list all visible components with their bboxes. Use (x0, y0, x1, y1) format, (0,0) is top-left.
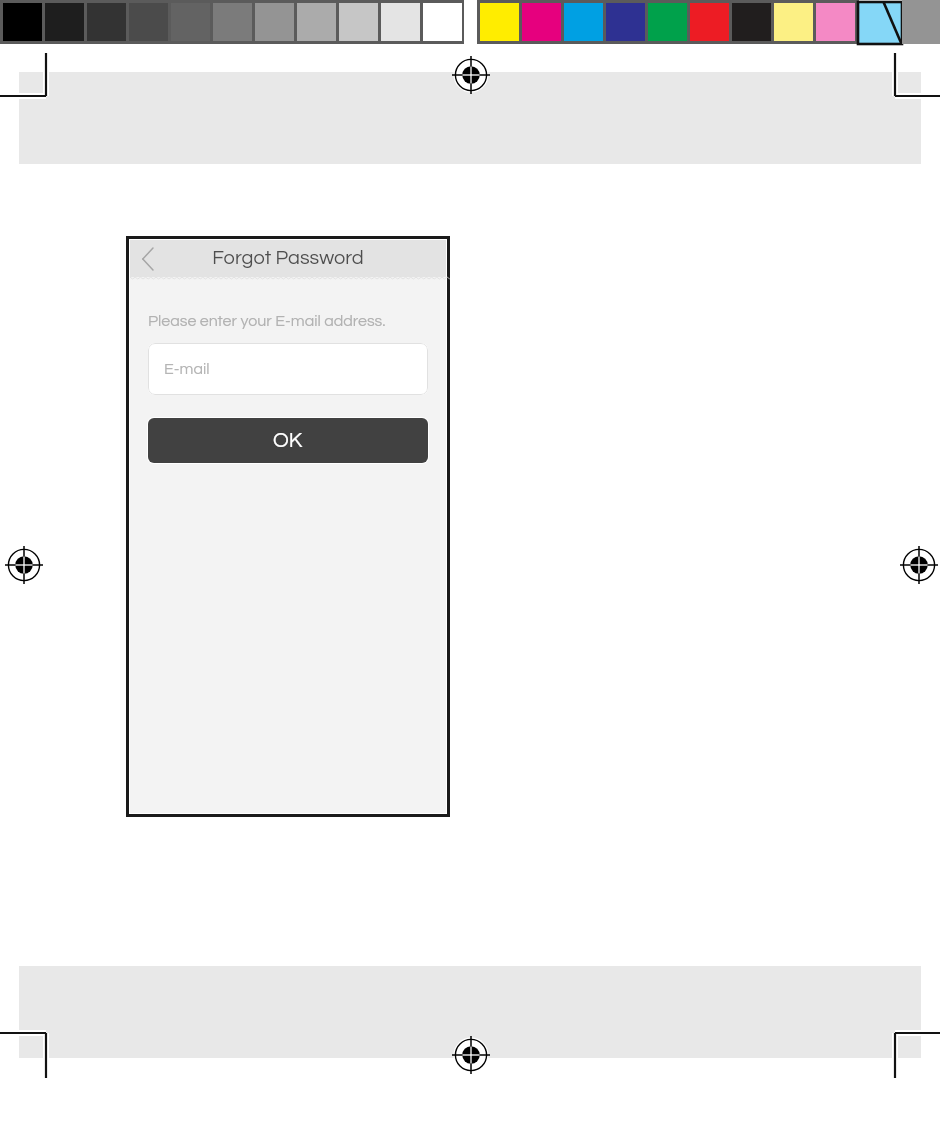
button[interactable]: E-mail (148, 343, 428, 395)
staticText: Please enter your E-mail address. (148, 313, 386, 329)
button[interactable]: Back (132, 244, 162, 274)
button[interactable]: OK (147, 417, 429, 464)
staticText: E-mail (164, 361, 210, 377)
staticText: Forgot Password (212, 248, 364, 269)
staticText: OK (273, 430, 303, 452)
